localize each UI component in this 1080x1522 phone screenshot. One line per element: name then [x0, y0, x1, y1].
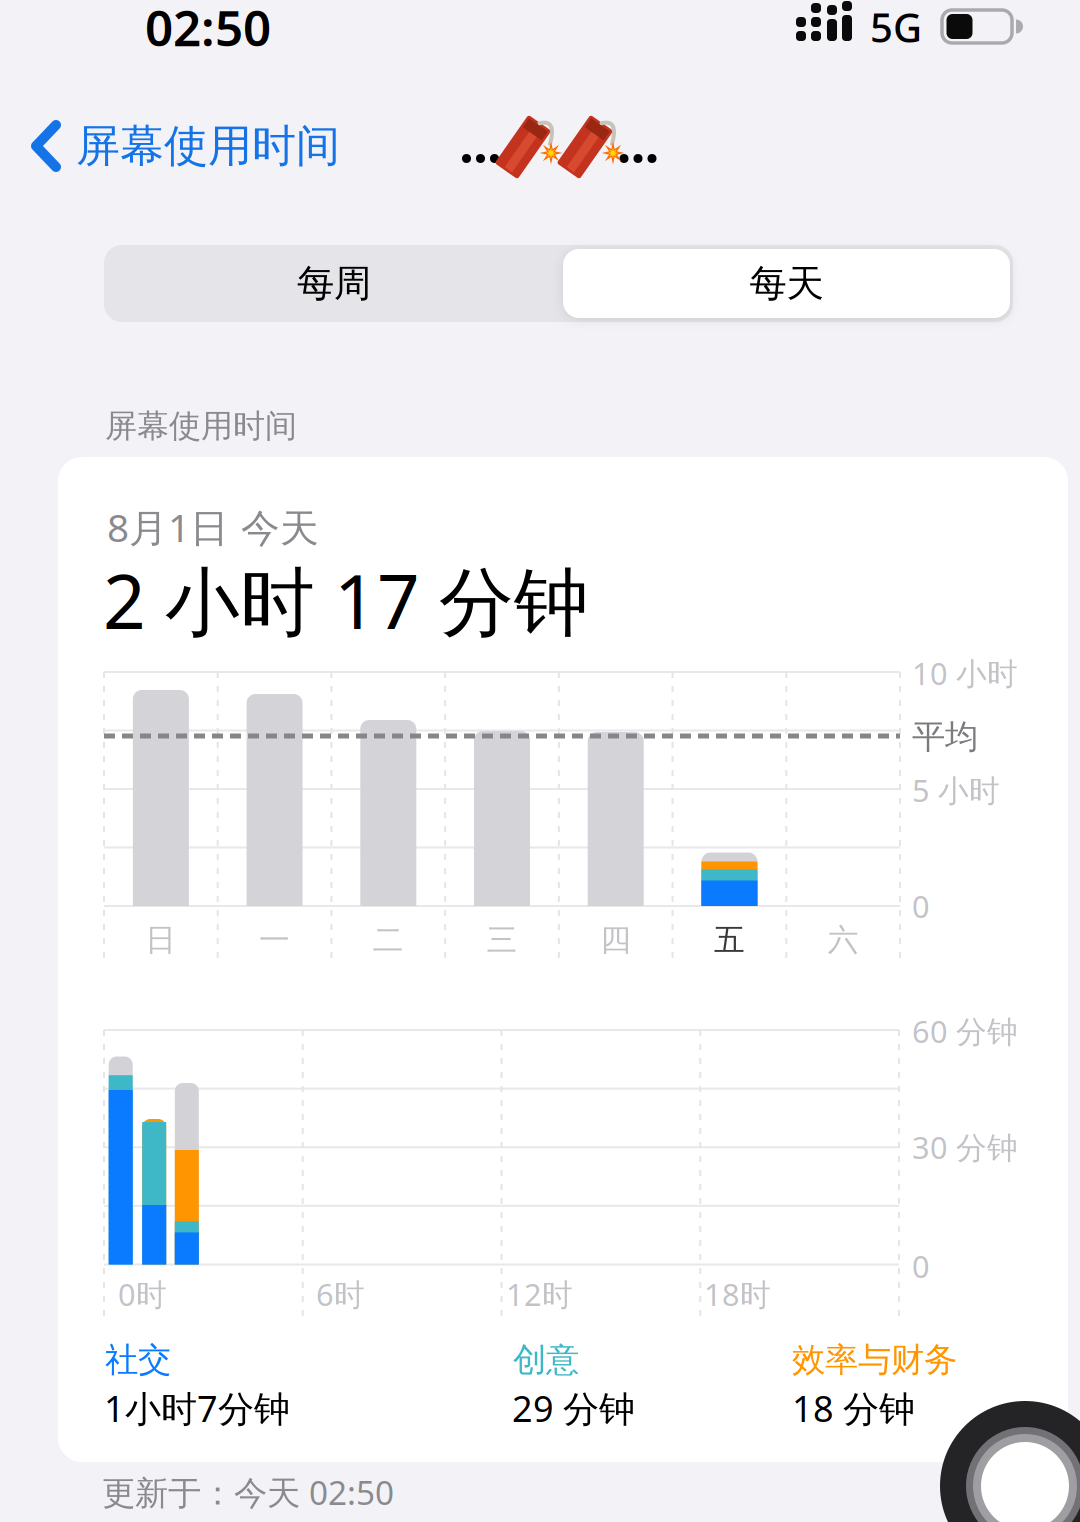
staticText: 创意 — [513, 1339, 579, 1380]
staticText: 60 分钟 — [912, 1011, 1018, 1051]
staticText: 2 小时 17 分钟 — [103, 550, 589, 650]
staticText: 四 — [600, 921, 631, 959]
staticText: 二 — [373, 921, 404, 959]
button[interactable]: 辅助触控 — [940, 1401, 1080, 1522]
staticText: 屏幕使用时间 — [105, 406, 297, 446]
staticText: 五 — [714, 921, 745, 959]
staticText: 12时 — [506, 1274, 573, 1314]
staticText: 每天 — [749, 261, 823, 306]
staticText: 日 — [145, 921, 176, 959]
staticText: 30 分钟 — [912, 1127, 1018, 1167]
staticText: 0 — [912, 886, 930, 926]
staticText: 一 — [259, 921, 290, 959]
staticText: 5G — [870, 0, 922, 53]
staticText: 屏幕使用时间 — [76, 119, 340, 173]
staticText: 每周 — [297, 261, 371, 306]
staticText: 更新于：今天 02:50 — [102, 1470, 394, 1514]
staticText: 六 — [828, 921, 859, 959]
staticText: 效率与财务 — [792, 1339, 957, 1380]
staticText: 29 分钟 — [512, 1384, 635, 1432]
button[interactable]: 每周 — [114, 248, 554, 318]
staticText: 8月1日 今天 — [107, 501, 319, 553]
staticText: 18时 — [704, 1274, 771, 1314]
staticText: 5 小时 — [912, 770, 1000, 810]
staticText: 02:50 — [145, 0, 271, 60]
button[interactable]: 每天 — [566, 248, 1006, 318]
staticText: 三 — [486, 921, 517, 959]
staticText: 社交 — [105, 1339, 171, 1380]
staticText: 0时 — [118, 1274, 167, 1314]
staticText: 10 小时 — [912, 653, 1018, 693]
staticText: 18 分钟 — [792, 1384, 915, 1432]
staticText: 平均 — [912, 716, 978, 757]
staticText: 6时 — [316, 1274, 365, 1314]
staticText: 1小时7分钟 — [104, 1384, 290, 1432]
button[interactable]: 返回 屏幕使用时间 — [32, 119, 340, 173]
staticText: 0 — [912, 1246, 930, 1286]
